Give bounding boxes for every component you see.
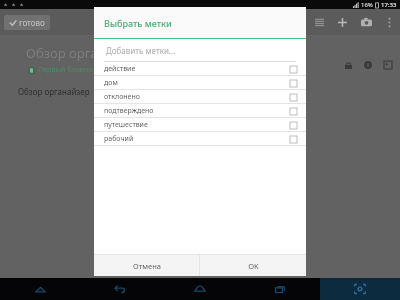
button[interactable]: дом — [94, 76, 306, 90]
button[interactable]: Отмена — [94, 255, 199, 276]
button[interactable]: Fullscreen — [320, 278, 400, 300]
button[interactable]: Добавить метки... — [94, 39, 306, 62]
button[interactable]: Home — [160, 278, 240, 300]
staticText: Первый блокнот — [38, 65, 96, 75]
button[interactable]: Back — [80, 278, 160, 300]
staticText: рабочий — [104, 134, 134, 144]
button[interactable]: Up — [0, 278, 80, 300]
button[interactable]: действие — [94, 62, 306, 76]
staticText: 16% — [361, 1, 373, 9]
button[interactable]: рабочий — [94, 132, 306, 146]
button[interactable]: OK — [200, 255, 306, 276]
staticText: Обзор органайзер — [18, 86, 90, 97]
staticText: дом — [104, 78, 118, 88]
button[interactable]: путешествие — [94, 118, 306, 132]
staticText: отклонено — [104, 92, 140, 102]
staticText: Добавить метки... — [106, 45, 176, 56]
button[interactable]: готово — [4, 15, 50, 30]
staticText: готово — [19, 17, 45, 28]
button[interactable]: Recent apps — [240, 278, 320, 300]
button[interactable]: отклонено — [94, 90, 306, 104]
button[interactable]: Add — [334, 14, 350, 30]
button[interactable]: Tag — [382, 59, 394, 71]
staticText: Обзор орга — [26, 44, 98, 62]
button[interactable]: подтверждено — [94, 104, 306, 118]
staticText: действие — [104, 64, 136, 74]
button[interactable]: More options — [382, 15, 396, 29]
staticText: Отмена — [133, 261, 161, 271]
staticText: OK — [248, 261, 259, 271]
staticText: 17:33 — [381, 1, 397, 9]
button[interactable]: Camera — [358, 14, 374, 30]
staticText: подтверждено — [104, 106, 154, 116]
button[interactable]: List — [312, 15, 326, 29]
staticText: путешествие — [104, 120, 148, 130]
button[interactable]: Info — [362, 59, 374, 71]
staticText: Выбрать метки — [104, 17, 172, 29]
button[interactable]: Lock — [342, 59, 354, 71]
